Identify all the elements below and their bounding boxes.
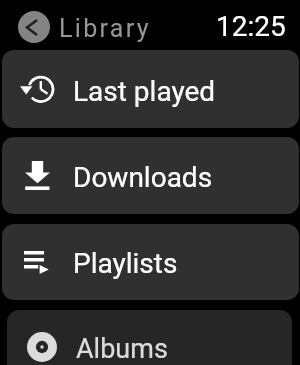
button[interactable]: Back: [18, 11, 50, 43]
staticText: Library: [59, 14, 151, 43]
staticText: Downloads: [73, 161, 213, 194]
button[interactable]: Last played: [2, 50, 299, 128]
button[interactable]: Downloads: [2, 137, 299, 214]
staticText: Albums: [76, 333, 168, 365]
staticText: Playlists: [73, 247, 178, 280]
button[interactable]: Playlists: [2, 224, 299, 300]
staticText: 12:25: [216, 10, 286, 43]
staticText: Last played: [73, 75, 216, 108]
button[interactable]: Albums: [7, 310, 292, 365]
